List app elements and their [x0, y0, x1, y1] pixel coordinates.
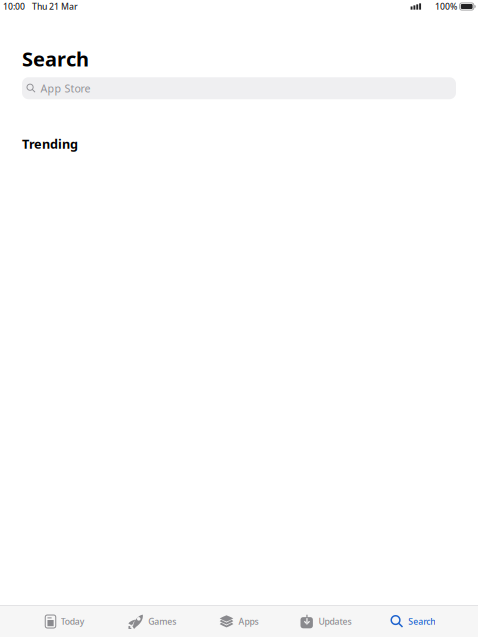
staticText: Updates: [318, 616, 351, 627]
staticText: Today: [61, 616, 85, 627]
button[interactable]: Apps: [195, 606, 282, 637]
button[interactable]: App Store: [22, 77, 456, 99]
button[interactable]: Games: [108, 606, 195, 637]
staticText: 10:00: [3, 1, 25, 12]
staticText: Search: [408, 616, 435, 627]
staticText: Apps: [239, 616, 259, 627]
staticText: Trending: [22, 135, 78, 152]
staticText: App Store: [41, 81, 91, 95]
staticText: Search: [22, 45, 89, 72]
button[interactable]: Search: [369, 606, 456, 637]
staticText: Games: [148, 616, 176, 627]
staticText: 100%: [435, 1, 457, 12]
button[interactable]: Today: [21, 606, 108, 637]
button[interactable]: Updates: [282, 606, 369, 637]
staticText: Thu 21 Mar: [32, 1, 78, 12]
